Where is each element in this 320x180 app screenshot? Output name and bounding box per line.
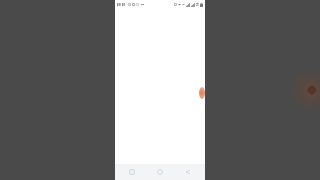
button[interactable]: Home [149,164,171,180]
button[interactable]: Back [177,164,199,180]
button[interactable]: Recents [121,164,143,180]
